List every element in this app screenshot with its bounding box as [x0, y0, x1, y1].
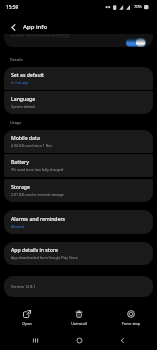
- button[interactable]: Language: [4, 91, 153, 114]
- staticText: Details: [10, 57, 23, 62]
- staticText: 4.94 GB used since 1 Nov: [11, 143, 53, 148]
- staticText: App details in store: [11, 247, 58, 254]
- staticText: Allowed: [11, 224, 24, 229]
- staticText: 70%: [134, 4, 142, 9]
- button[interactable]: App details in store: [4, 242, 153, 265]
- staticText: 15:59: [6, 4, 19, 11]
- staticText: Uninstall: [71, 321, 87, 326]
- button[interactable]: Uninstall: [53, 310, 105, 326]
- staticText: Storage: [11, 184, 30, 191]
- button[interactable]: Allow restricted settings: [4, 34, 153, 47]
- staticText: In this app: [11, 80, 29, 85]
- button[interactable]: Back: [6, 20, 20, 34]
- button[interactable]: Open: [0, 310, 53, 326]
- staticText: Alarms and reminders: [11, 216, 66, 223]
- staticText: Battery: [11, 159, 29, 166]
- button[interactable]: Recent apps: [26, 331, 44, 349]
- staticText: Language: [11, 96, 36, 103]
- staticText: System default: [11, 104, 36, 109]
- button[interactable]: Version 12.8.1: [4, 276, 153, 297]
- staticText: Force stop: [122, 321, 140, 326]
- staticText: Open: [22, 321, 32, 326]
- button[interactable]: Force stop: [105, 310, 157, 326]
- button[interactable]: Home: [70, 331, 88, 349]
- staticText: Mobile data: [11, 135, 40, 142]
- staticText: Version 12.8.1: [11, 284, 36, 289]
- staticText: 9% used since last fully charged: [11, 167, 64, 172]
- button[interactable]: Battery: [4, 154, 153, 177]
- button[interactable]: Back: [113, 331, 131, 349]
- button[interactable]: Mobile data: [4, 130, 153, 153]
- button[interactable]: Alarms and reminders: [4, 210, 153, 234]
- button[interactable]: Set as default: [4, 67, 153, 90]
- staticText: 2.01 GB used in internal storage: [11, 192, 64, 197]
- staticText: Set as default: [11, 72, 45, 79]
- staticText: Usage: [10, 120, 22, 125]
- button[interactable]: Storage: [4, 179, 153, 202]
- staticText: Allow restricted settings: [11, 34, 70, 39]
- staticText: App info: [23, 23, 48, 31]
- staticText: App downloaded from Google Play Store: [11, 255, 78, 260]
